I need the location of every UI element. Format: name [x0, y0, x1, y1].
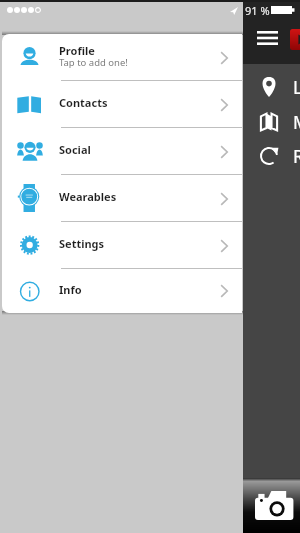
- button[interactable]: Contacts: [2, 81, 242, 128]
- staticText: Location: [293, 75, 300, 99]
- staticText: Info: [59, 282, 82, 297]
- button[interactable]: Camera: [254, 490, 294, 520]
- staticText: Refresh: [293, 144, 300, 168]
- staticText: Social: [59, 142, 91, 157]
- button[interactable]: Refresh: [256, 142, 300, 170]
- button[interactable]: Map: [256, 108, 300, 136]
- button[interactable]: Location: [256, 73, 300, 101]
- button[interactable]: Info: [2, 269, 242, 313]
- staticText: Contacts: [59, 95, 108, 110]
- button[interactable]: Profile: [2, 34, 242, 81]
- staticText: Settings: [59, 236, 105, 251]
- button[interactable]: Open navigation drawer: [251, 25, 283, 51]
- button[interactable]: Settings: [2, 222, 242, 269]
- button[interactable]: Social: [2, 128, 242, 175]
- staticText: Profile: [59, 43, 95, 58]
- staticText: 91 %: [245, 3, 270, 18]
- button[interactable]: Wearables: [2, 175, 242, 222]
- staticText: Wearables: [59, 189, 117, 204]
- staticText: Map: [293, 110, 300, 134]
- staticText: Tap to add one!: [59, 56, 128, 69]
